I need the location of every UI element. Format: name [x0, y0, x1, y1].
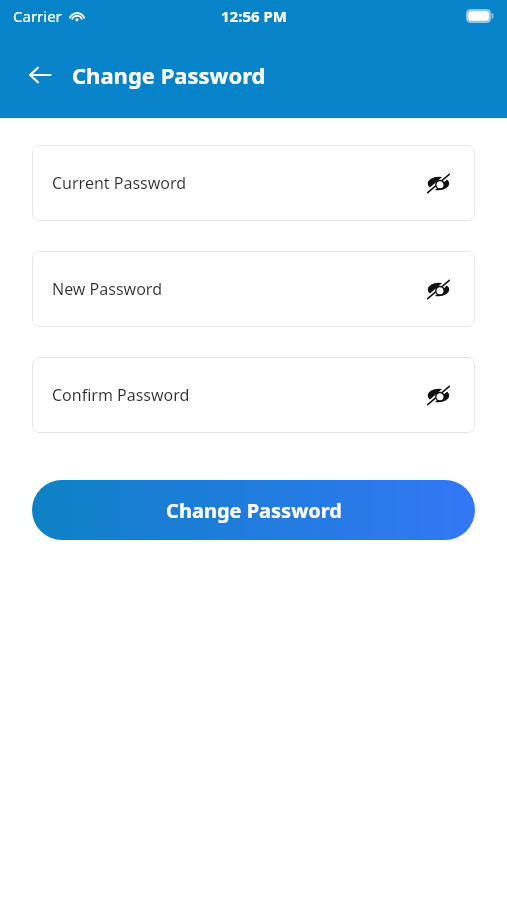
staticText: Carrier — [13, 6, 62, 26]
button[interactable]: Current Password — [32, 145, 475, 221]
button[interactable]: Show password — [421, 378, 455, 412]
button[interactable]: Show password — [421, 166, 455, 200]
staticText: Change Password — [166, 497, 342, 524]
button[interactable]: Back — [18, 53, 62, 97]
staticText: Current Password — [52, 172, 187, 194]
button[interactable]: Change Password — [32, 480, 475, 540]
staticText: New Password — [52, 278, 162, 300]
button[interactable]: Show password — [421, 272, 455, 306]
button[interactable]: Confirm Password — [32, 357, 475, 433]
staticText: 12:56 PM — [221, 6, 287, 26]
staticText: Confirm Password — [52, 384, 190, 406]
staticText: Change Password — [72, 60, 266, 90]
button[interactable]: New Password — [32, 251, 475, 327]
